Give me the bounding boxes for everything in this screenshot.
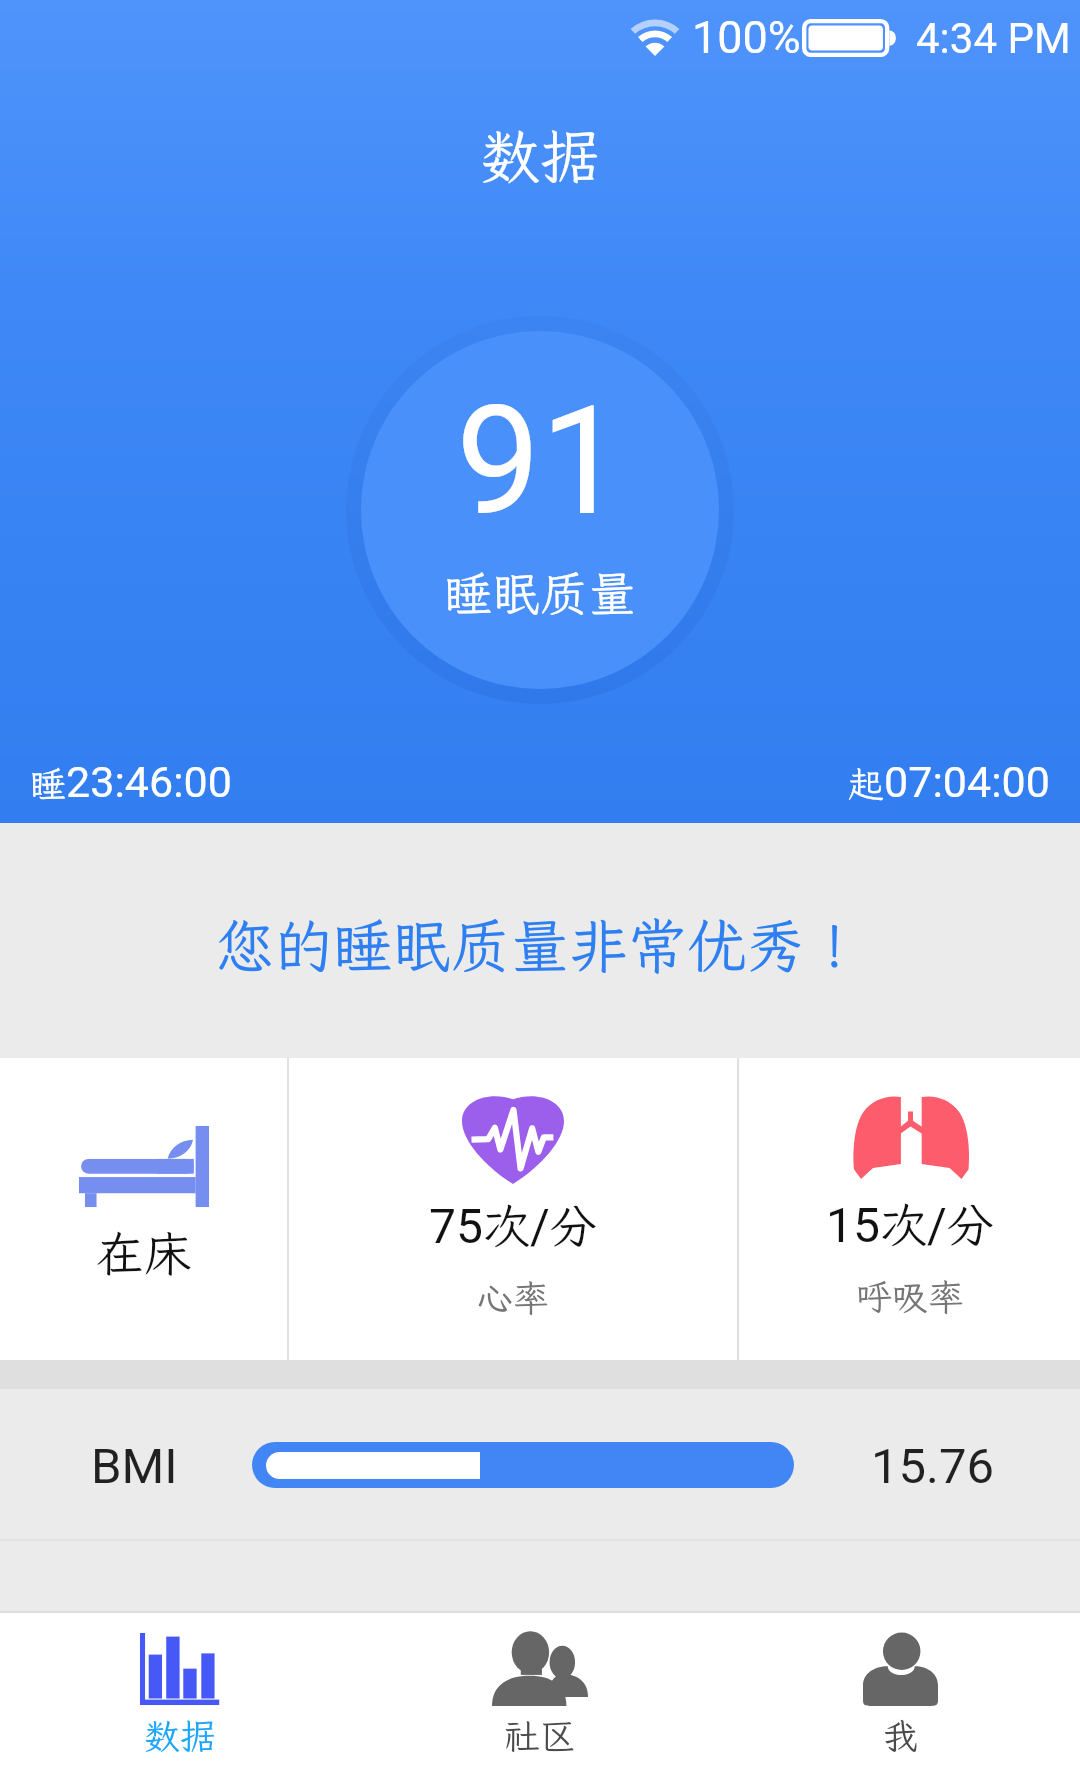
other: Wi-Fi xyxy=(629,19,681,56)
other: 社区 xyxy=(492,1632,588,1706)
button[interactable]: 15次/分 xyxy=(739,1058,1080,1360)
staticText: 您的睡眠质量非常优秀！ xyxy=(215,906,865,984)
button[interactable]: 社区 xyxy=(360,1613,720,1776)
staticText: 75次/分 xyxy=(429,1194,597,1256)
staticText: 社区 xyxy=(504,1712,577,1759)
staticText: 我 xyxy=(882,1712,919,1759)
staticText: 呼吸率 xyxy=(856,1273,965,1320)
button[interactable]: 数据 xyxy=(0,1613,360,1776)
staticText: 数据 xyxy=(480,116,600,195)
staticText: 100% xyxy=(692,11,801,64)
button[interactable]: BMI xyxy=(0,1360,1080,1540)
staticText: 数据 xyxy=(144,1712,217,1759)
staticText: 睡23:46:00 xyxy=(30,757,232,807)
button[interactable]: 75次/分 xyxy=(289,1058,737,1360)
staticText: 4:34 PM xyxy=(916,14,1071,63)
staticText: BMI xyxy=(91,1438,178,1495)
button[interactable]: 在床 xyxy=(0,1058,287,1360)
staticText: 15.76 xyxy=(871,1438,995,1495)
button[interactable]: 我 xyxy=(720,1613,1080,1776)
staticText: 起07:04:00 xyxy=(848,757,1050,807)
staticText: 91 xyxy=(456,374,625,534)
staticText: 在床 xyxy=(96,1221,193,1284)
staticText: 15次/分 xyxy=(826,1193,994,1255)
other: 我 xyxy=(863,1632,938,1706)
staticText: 睡眠质量 xyxy=(444,561,637,624)
staticText: 心率 xyxy=(477,1274,550,1321)
other: Battery xyxy=(802,19,898,57)
